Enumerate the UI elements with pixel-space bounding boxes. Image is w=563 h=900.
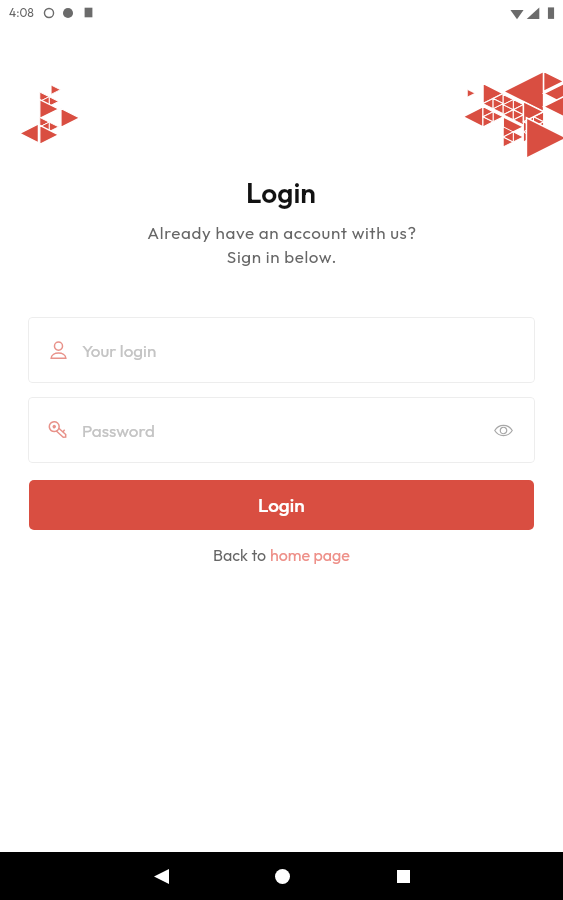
button[interactable]: Recents	[379, 852, 427, 900]
button[interactable]: Show password	[489, 416, 517, 444]
staticText: Login	[258, 493, 305, 517]
staticText: Login	[246, 175, 317, 210]
staticText: Already have an account with us? Sign in…	[147, 222, 417, 267]
button[interactable]: Login	[29, 480, 534, 530]
staticText: 4:08	[9, 5, 34, 20]
button[interactable]: Back to	[213, 545, 350, 565]
button[interactable]: Password	[28, 397, 535, 463]
staticText: home page	[270, 545, 350, 565]
button[interactable]: Home	[258, 852, 306, 900]
button[interactable]: Back	[137, 852, 185, 900]
staticText: Your login	[82, 340, 157, 361]
staticText: Password	[82, 420, 155, 441]
staticText: Back to	[213, 545, 270, 565]
button[interactable]: Your login	[28, 317, 535, 383]
